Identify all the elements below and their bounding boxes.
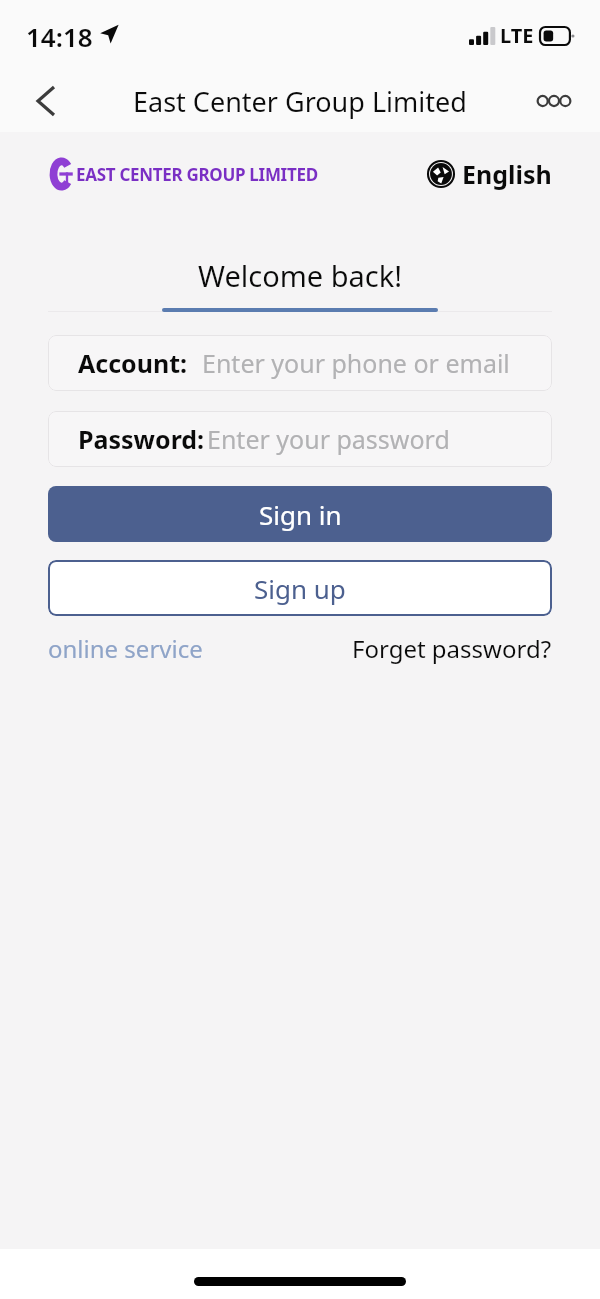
staticText: EAST CENTER GROUP LIMITED [76, 163, 318, 186]
button[interactable]: Sign in [48, 486, 552, 542]
button[interactable]: Forget password? [352, 632, 552, 665]
button[interactable]: online service [48, 632, 203, 665]
staticText: Enter your phone or email [202, 346, 510, 380]
button[interactable]: Account: [48, 335, 552, 391]
staticText: Welcome back! [198, 256, 403, 295]
staticText: 14:18 [26, 19, 93, 54]
staticText: Password: [78, 422, 205, 456]
staticText: Forget password? [352, 632, 552, 665]
staticText: Sign up [254, 571, 346, 606]
button[interactable]: Back [22, 77, 70, 125]
staticText: English [462, 157, 552, 191]
button[interactable]: More options [530, 77, 578, 125]
button[interactable]: Sign up [48, 560, 552, 616]
staticText: East Center Group Limited [133, 83, 467, 120]
staticText: Enter your password [207, 422, 450, 456]
button[interactable]: Welcome back! [0, 252, 600, 298]
staticText: Account: [78, 346, 188, 380]
button[interactable]: Password: [48, 411, 552, 467]
staticText: online service [48, 632, 203, 665]
staticText: LTE [500, 22, 534, 49]
button[interactable]: English [428, 157, 552, 191]
staticText: Sign in [259, 497, 342, 532]
